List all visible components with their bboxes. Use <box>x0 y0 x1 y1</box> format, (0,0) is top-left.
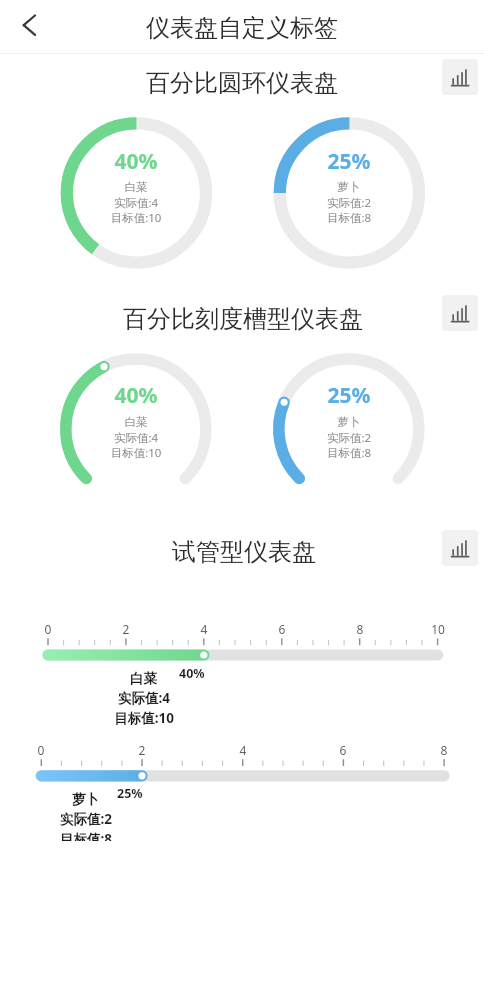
staticText: 4 <box>174 621 234 637</box>
staticText: 仪表盘自定义标签 <box>32 13 452 43</box>
staticText: 2 <box>96 621 156 637</box>
button[interactable]: Back <box>5 2 53 50</box>
staticText: 实际值:2 <box>0 810 186 828</box>
staticText: 白菜 <box>66 415 206 429</box>
staticText: 4 <box>213 742 273 758</box>
staticText: 实际值:4 <box>66 195 206 211</box>
staticText: 0 <box>11 742 71 758</box>
staticText: 目标值:10 <box>66 445 206 461</box>
staticText: 百分比圆环仪表盘 <box>32 68 452 98</box>
staticText: 目标值:8 <box>279 445 419 461</box>
staticText: 实际值:4 <box>44 689 244 707</box>
staticText: 目标值:8 <box>279 210 419 226</box>
staticText: 40% <box>66 381 206 410</box>
staticText: 实际值:2 <box>279 430 419 446</box>
staticText: 6 <box>313 742 373 758</box>
staticText: 25% <box>279 381 419 410</box>
button[interactable]: Chart view <box>442 530 478 566</box>
staticText: 25% <box>279 147 419 176</box>
staticText: 6 <box>252 621 312 637</box>
staticText: 白菜 <box>66 180 206 194</box>
button[interactable]: Chart view <box>442 59 478 95</box>
staticText: 8 <box>330 621 390 637</box>
staticText: 百分比刻度槽型仪表盘 <box>23 304 463 334</box>
button[interactable]: Chart view <box>442 295 478 331</box>
staticText: 40% <box>66 147 206 176</box>
staticText: 目标值:10 <box>44 709 244 727</box>
staticText: 实际值:2 <box>279 195 419 211</box>
staticText: 白菜 <box>130 670 157 687</box>
staticText: 25% <box>117 785 143 802</box>
staticText: 2 <box>112 742 172 758</box>
staticText: 目标值:8 <box>0 830 186 848</box>
staticText: 试管型仪表盘 <box>34 537 454 567</box>
staticText: 萝卜 <box>279 415 419 429</box>
staticText: 目标值:10 <box>66 210 206 226</box>
staticText: 萝卜 <box>279 180 419 194</box>
staticText: 0 <box>18 621 78 637</box>
staticText: 实际值:4 <box>66 430 206 446</box>
staticText: 8 <box>414 742 474 758</box>
staticText: 40% <box>179 665 205 682</box>
staticText: 萝卜 <box>72 791 99 808</box>
staticText: 10 <box>408 621 468 637</box>
